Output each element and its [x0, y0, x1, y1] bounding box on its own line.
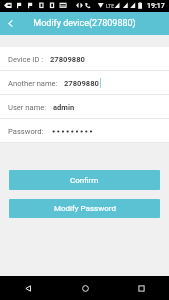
staticText: User name:: [8, 103, 47, 112]
staticText: Confirm: [70, 176, 99, 185]
button[interactable]: Password:: [0, 119, 169, 143]
button[interactable]: Recents: [113, 276, 169, 300]
button[interactable]: Device ID :: [0, 47, 169, 71]
staticText: Password:: [8, 127, 44, 136]
button[interactable]: User name:: [0, 95, 169, 119]
staticText: 19:17: [147, 2, 165, 10]
button[interactable]: Confirm: [9, 170, 160, 190]
button[interactable]: Back: [0, 276, 57, 300]
button[interactable]: Home: [57, 276, 113, 300]
staticText: Another name:: [8, 79, 58, 88]
button[interactable]: Back: [0, 13, 21, 34]
staticText: 27809880: [50, 55, 85, 64]
staticText: Modify device(27809880): [33, 18, 136, 29]
staticText: Device ID :: [8, 55, 44, 64]
staticText: Modify Password: [54, 204, 116, 213]
staticText: LTE: [106, 3, 115, 9]
staticText: admin: [53, 103, 75, 112]
staticText: 27809880: [64, 79, 99, 88]
button[interactable]: Another name:: [0, 71, 169, 95]
button[interactable]: Modify Password: [9, 199, 160, 218]
